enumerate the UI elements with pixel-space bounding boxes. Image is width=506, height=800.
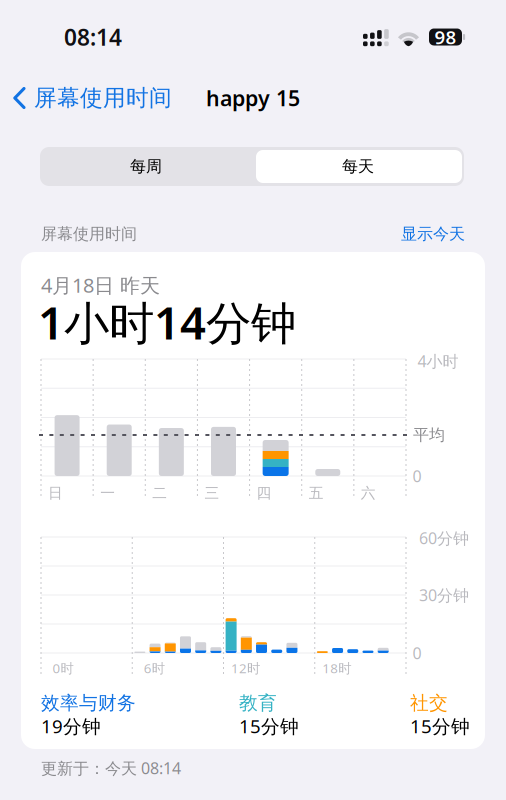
staticText: 4月18日 昨天: [41, 272, 160, 298]
staticText: 四: [257, 484, 272, 502]
button[interactable]: 每天: [252, 147, 464, 186]
staticText: 1小时14分钟: [38, 292, 296, 352]
staticText: 12时: [231, 659, 260, 677]
staticText: 二: [152, 484, 167, 502]
staticText: 社交: [410, 691, 448, 714]
staticText: 18时: [322, 659, 351, 677]
staticText: 19分钟: [41, 714, 101, 738]
staticText: 08:14: [64, 22, 122, 52]
staticText: 0时: [52, 659, 73, 677]
staticText: 每周: [130, 157, 162, 176]
staticText: 60分钟: [419, 527, 469, 549]
staticText: 屏幕使用时间: [34, 84, 172, 112]
staticText: 六: [361, 484, 376, 502]
staticText: 五: [309, 484, 324, 502]
staticText: 屏幕使用时间: [41, 224, 137, 244]
staticText: 98: [434, 25, 456, 49]
staticText: 平均: [413, 425, 445, 445]
staticText: 15分钟: [410, 714, 470, 738]
button[interactable]: 屏幕使用时间: [13, 76, 188, 120]
staticText: 日: [48, 484, 63, 502]
staticText: 0: [412, 642, 421, 664]
staticText: 显示今天: [401, 224, 465, 244]
staticText: 30分钟: [419, 584, 469, 606]
staticText: 每天: [342, 157, 374, 176]
staticText: 15分钟: [239, 714, 299, 738]
staticText: 4小时: [417, 350, 458, 372]
staticText: 三: [204, 484, 219, 502]
staticText: 6时: [144, 659, 165, 677]
staticText: 效率与财务: [41, 691, 136, 714]
staticText: happy 15: [206, 84, 300, 112]
staticText: 一: [100, 484, 115, 502]
button[interactable]: 显示今天: [375, 221, 465, 247]
staticText: 0: [412, 465, 421, 487]
staticText: 教育: [239, 691, 277, 714]
staticText: 更新于：今天 08:14: [41, 757, 181, 779]
button[interactable]: 每周: [40, 147, 252, 186]
